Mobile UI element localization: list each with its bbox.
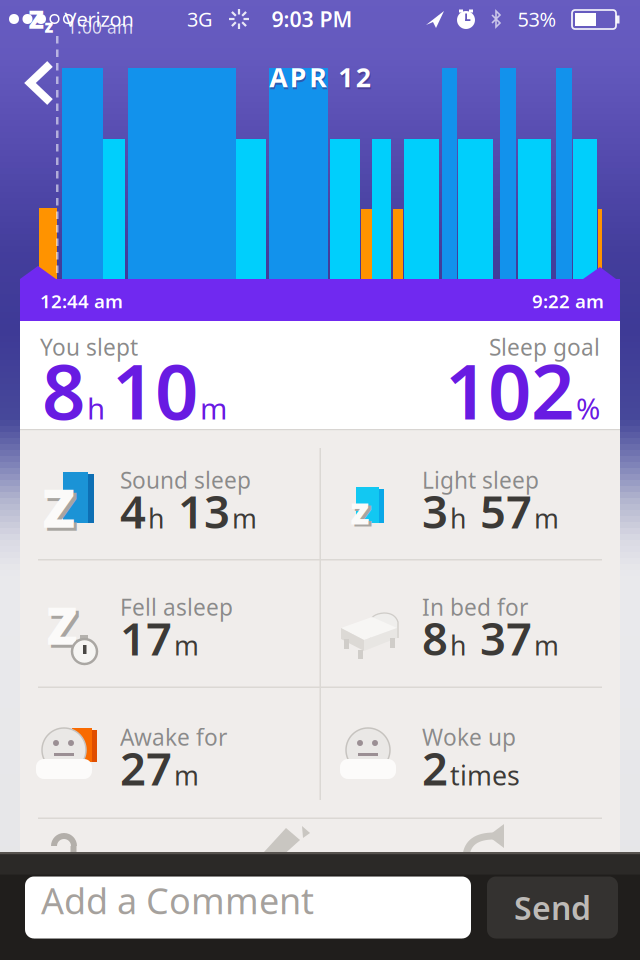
staticText: 57 (468, 481, 532, 541)
staticText: In bed for (422, 592, 528, 622)
staticText: h (450, 500, 466, 536)
staticText: Awake for (120, 722, 227, 752)
staticText: 12:44 am (40, 289, 123, 313)
button[interactable]: Add a Comment (25, 876, 471, 938)
staticText: Sound sleep (120, 465, 251, 495)
staticText: m (174, 627, 199, 663)
staticText: 1:00 am (67, 15, 133, 38)
staticText: 53% (517, 6, 556, 32)
staticText: z (44, 14, 53, 37)
staticText: h (450, 627, 466, 663)
staticText: 37 (468, 608, 532, 668)
staticText: m (200, 389, 227, 428)
staticText: Z (46, 591, 77, 659)
staticText: Woke up (422, 722, 516, 752)
staticText: 2 (422, 738, 448, 798)
staticText: 102 (445, 339, 574, 440)
staticText: Light sleep (422, 465, 539, 495)
staticText: Z (28, 2, 43, 36)
staticText: 9:03 PM (271, 5, 352, 33)
staticText: Z (45, 475, 78, 545)
staticText: % (576, 389, 600, 428)
staticText: m (534, 500, 559, 536)
staticText: 17 (120, 608, 172, 668)
staticText: 9:22 am (532, 289, 604, 313)
staticText: h (87, 389, 105, 428)
button[interactable]: Share (458, 824, 528, 858)
staticText: z (353, 487, 372, 537)
staticText: times (450, 757, 520, 793)
staticText: 3 (422, 481, 448, 541)
staticText: 8 (42, 339, 85, 440)
staticText: 4 (120, 481, 146, 541)
staticText: You slept (40, 332, 138, 362)
staticText: APR 12 (270, 61, 372, 97)
button[interactable]: Back (20, 55, 64, 111)
button[interactable]: Edit (258, 824, 328, 858)
button[interactable]: Send (487, 876, 618, 938)
staticText: Sleep goal (489, 332, 600, 362)
staticText: h (148, 500, 164, 536)
staticText: m (534, 627, 559, 663)
staticText: Verizon (64, 6, 133, 32)
staticText: Fell asleep (120, 592, 233, 622)
staticText: z (350, 485, 369, 535)
staticText: APR 12 (269, 59, 371, 95)
staticText: m (232, 500, 257, 536)
staticText: Z (42, 472, 75, 542)
staticText: 10 (112, 339, 198, 440)
staticText: Z (49, 594, 80, 662)
staticText: 13 (166, 481, 230, 541)
staticText: m (174, 757, 199, 793)
staticText: Add a Comment (41, 876, 314, 924)
staticText: 3G (187, 6, 213, 32)
staticText: 27 (120, 738, 172, 798)
staticText: Send (514, 886, 591, 929)
staticText: 8 (422, 608, 448, 668)
button[interactable]: Insights (42, 824, 112, 858)
